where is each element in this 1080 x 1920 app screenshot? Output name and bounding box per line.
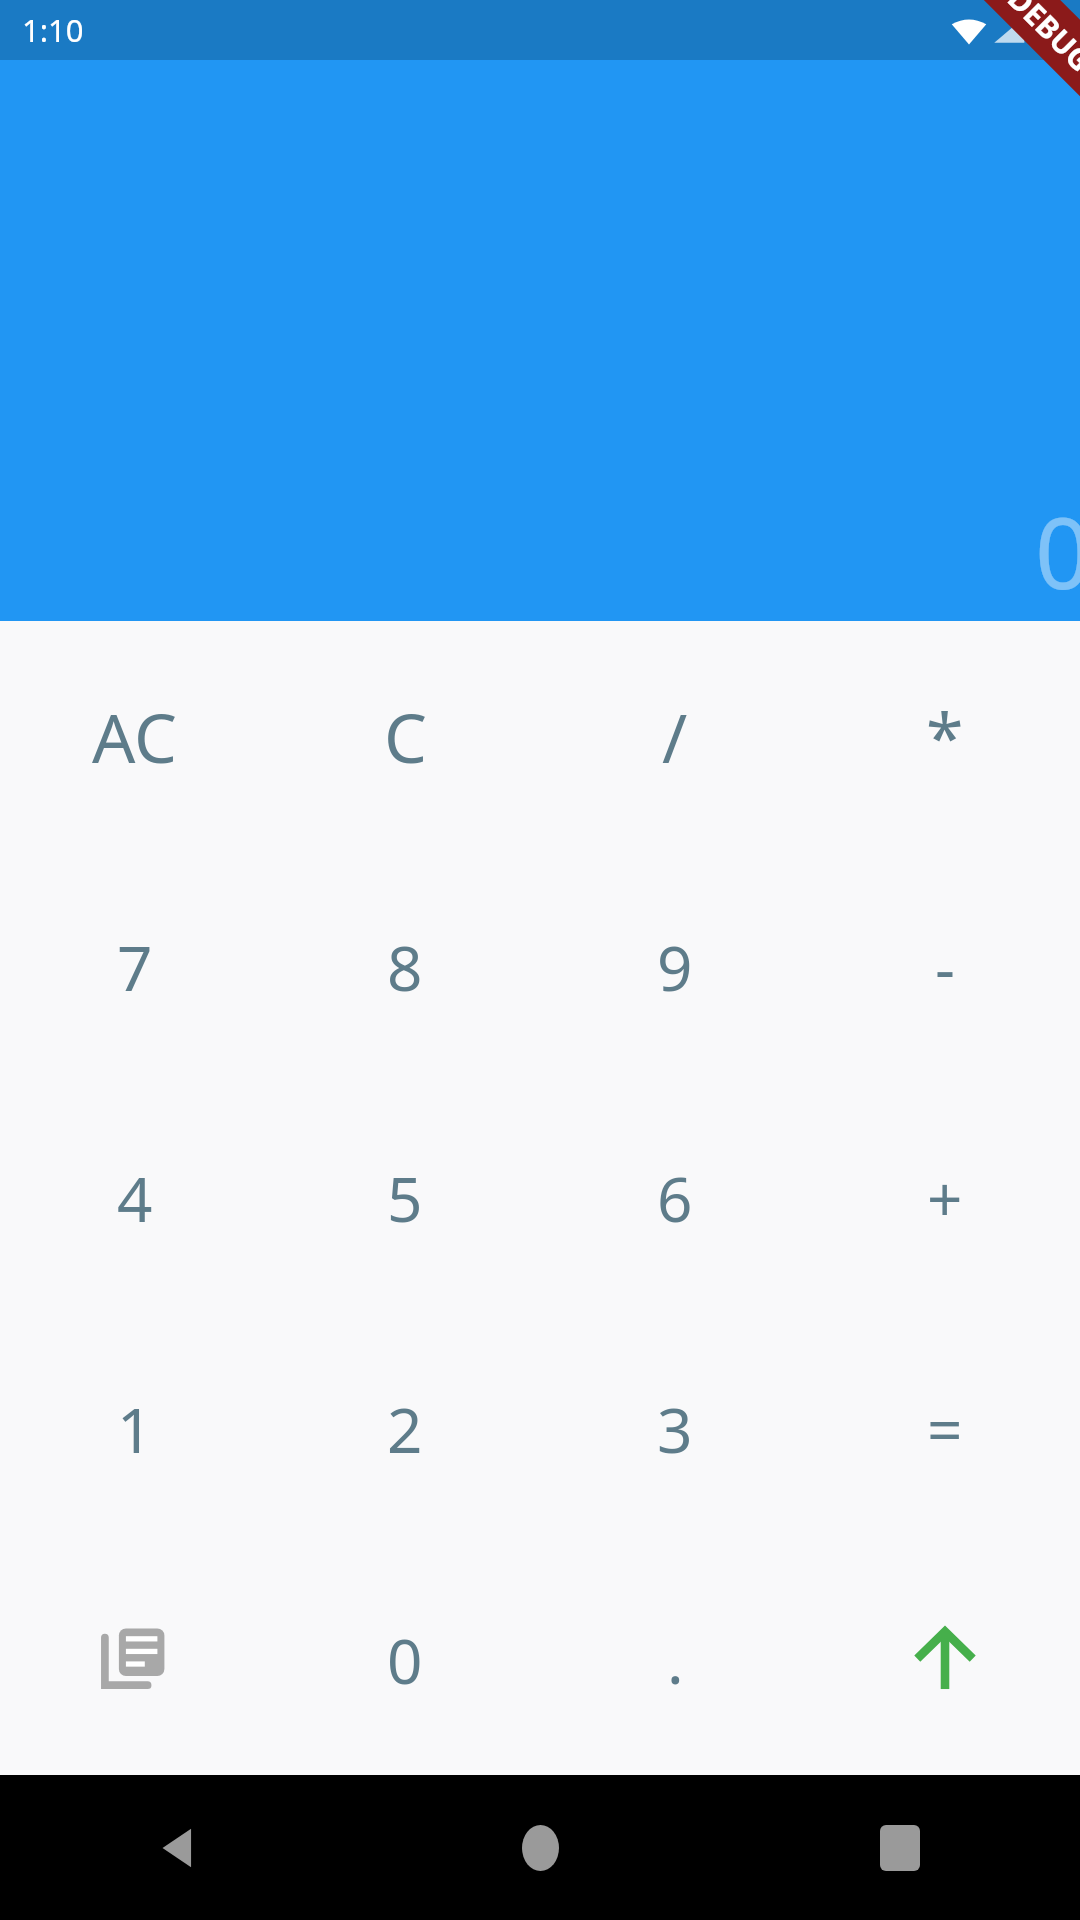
button[interactable]: 1 (0, 1313, 270, 1544)
button[interactable]: 7 (0, 851, 270, 1082)
button[interactable]: 9 (540, 851, 810, 1082)
button[interactable]: * (810, 621, 1080, 851)
staticText: 2 (387, 1387, 423, 1471)
button[interactable]: 3 (540, 1313, 810, 1544)
button[interactable]: Back (0, 1775, 360, 1920)
staticText: AC (92, 690, 178, 783)
staticText: 0 (1035, 484, 1080, 617)
staticText: C (384, 690, 427, 783)
staticText: / (662, 690, 688, 783)
button[interactable]: Recents (720, 1775, 1080, 1920)
button[interactable]: 2 (270, 1313, 540, 1544)
staticText: - (935, 925, 955, 1009)
staticText: = (927, 1387, 963, 1471)
button[interactable]: = (810, 1313, 1080, 1544)
staticText: * (926, 690, 964, 783)
staticText: 3 (657, 1387, 693, 1471)
button[interactable]: / (540, 621, 810, 851)
button[interactable]: 5 (270, 1082, 540, 1313)
staticText: 1:10 (22, 9, 84, 51)
staticText: + (927, 1156, 963, 1240)
staticText: 5 (387, 1156, 423, 1240)
button[interactable]: 8 (270, 851, 540, 1082)
button[interactable]: 6 (540, 1082, 810, 1313)
staticText: 8 (387, 925, 423, 1009)
staticText: DEBUG (999, 0, 1080, 81)
staticText: 1 (117, 1387, 153, 1471)
staticText: 0 (387, 1618, 423, 1702)
staticText: 9 (657, 925, 693, 1009)
staticText: 4 (117, 1156, 153, 1240)
button[interactable]: Enter (810, 1544, 1080, 1775)
staticText: . (667, 1618, 684, 1702)
button[interactable]: + (810, 1082, 1080, 1313)
staticText: 6 (657, 1156, 693, 1240)
button[interactable]: AC (0, 621, 270, 851)
button[interactable]: - (810, 851, 1080, 1082)
button[interactable]: 4 (0, 1082, 270, 1313)
staticText: 7 (117, 925, 153, 1009)
button[interactable]: Home (360, 1775, 720, 1920)
button[interactable]: C (270, 621, 540, 851)
button[interactable]: History (0, 1544, 270, 1775)
button[interactable]: . (540, 1544, 810, 1775)
button[interactable]: 0 (270, 1544, 540, 1775)
